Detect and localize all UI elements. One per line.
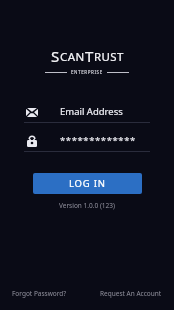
- staticText: Request An Account: [100, 289, 162, 298]
- staticText: CAN: [60, 49, 85, 65]
- button[interactable]: Email: [24, 101, 150, 122]
- staticText: RUST: [94, 49, 124, 65]
- other: Email: [24, 104, 40, 120]
- staticText: ENTERPRISE: [71, 69, 103, 75]
- button[interactable]: Forgot Password?: [8, 286, 71, 301]
- button[interactable]: Password: [24, 130, 150, 151]
- staticText: S: [51, 46, 60, 66]
- staticText: Forgot Password?: [12, 289, 67, 298]
- other: Password: [24, 133, 40, 149]
- button[interactable]: LOG IN: [33, 173, 142, 194]
- staticText: LOG IN: [69, 177, 106, 190]
- button[interactable]: Request An Account: [96, 286, 166, 301]
- staticText: *************: [60, 134, 136, 147]
- staticText: T: [85, 46, 94, 66]
- staticText: Version 1.0.0 (123): [59, 201, 115, 210]
- staticText: Email Address: [60, 105, 123, 118]
